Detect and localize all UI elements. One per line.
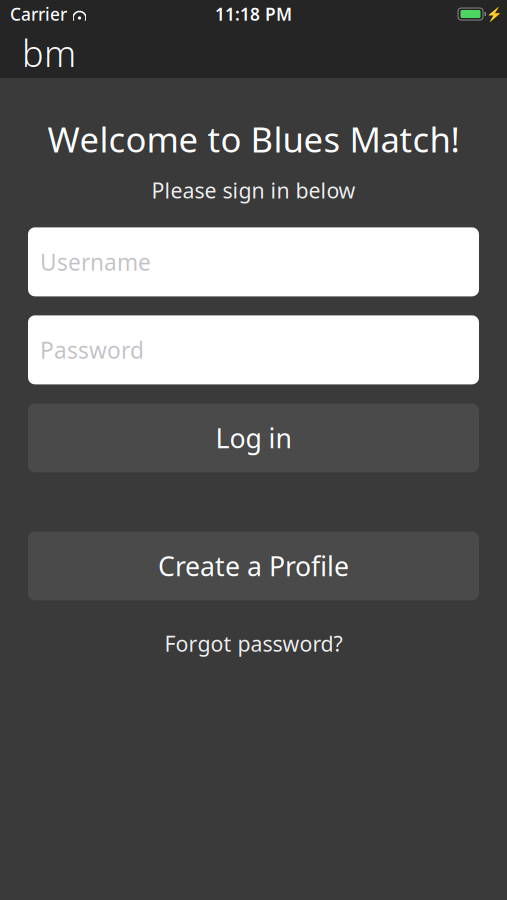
staticText: 11:18 PM — [215, 2, 292, 25]
staticText: ⚡ — [485, 6, 502, 22]
staticText: Welcome to Blues Match! — [47, 116, 459, 162]
staticText: bm — [22, 29, 76, 77]
staticText: Log in — [215, 420, 291, 456]
staticText: Carrier — [10, 2, 67, 25]
staticText: Password — [40, 335, 144, 365]
button[interactable]: Blues Match home — [18, 28, 80, 78]
button[interactable]: Forgot password? — [150, 621, 356, 666]
button[interactable]: Log in — [28, 403, 479, 472]
button[interactable]: Username — [28, 227, 479, 296]
staticText: Please sign in below — [151, 176, 355, 204]
button[interactable]: Create a Profile — [28, 531, 479, 600]
button[interactable]: Password — [28, 315, 479, 384]
staticText: Username — [40, 247, 151, 277]
staticText: Forgot password? — [164, 629, 342, 658]
staticText: Create a Profile — [158, 548, 349, 584]
